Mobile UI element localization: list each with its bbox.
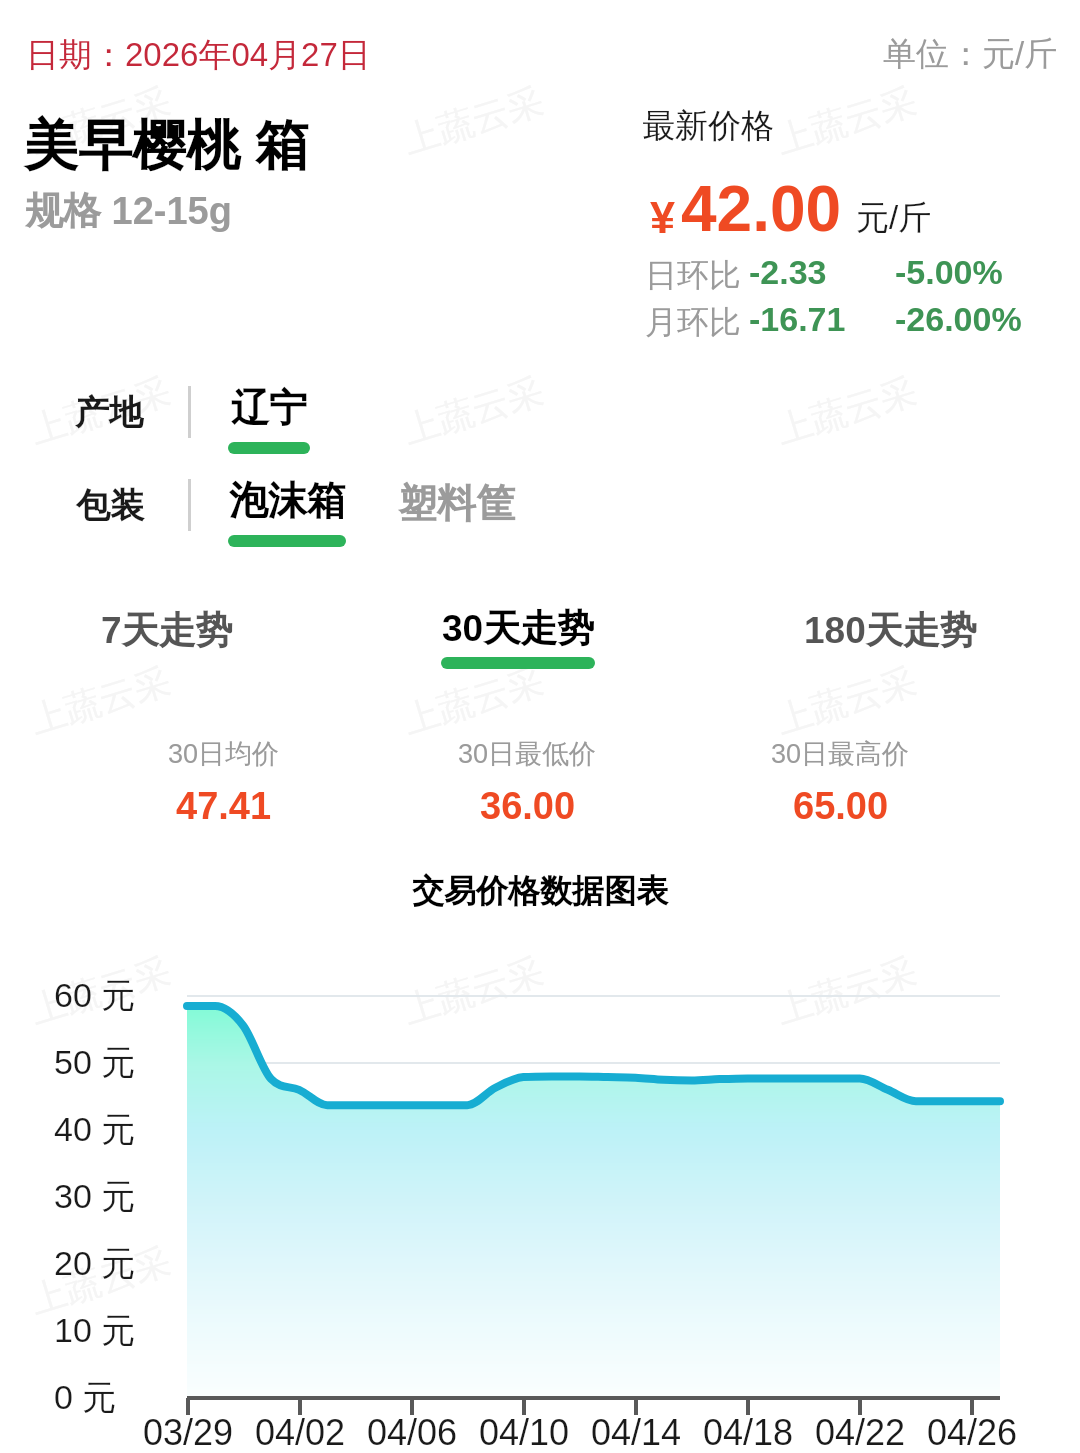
staticText: 10 元	[54, 1309, 136, 1352]
staticText: 月环比	[645, 302, 741, 342]
button[interactable]: 塑料筐	[398, 479, 515, 528]
staticText: 20 元	[54, 1242, 136, 1285]
staticText: 上蔬云采	[25, 948, 176, 1033]
staticText: 30日最低价	[458, 737, 597, 771]
staticText: 04/26	[927, 1412, 1018, 1452]
staticText: -2.33	[749, 253, 827, 291]
staticText: 最新价格	[642, 105, 774, 147]
staticText: 47.41	[176, 785, 272, 827]
staticText: 产地	[75, 391, 143, 434]
staticText: -5.00%	[895, 253, 1003, 291]
staticText: 上蔬云采	[771, 948, 922, 1033]
staticText: 包装	[76, 484, 144, 527]
staticText: 30日最高价	[771, 737, 910, 771]
staticText: -26.00%	[895, 300, 1022, 338]
staticText: 40 元	[54, 1108, 136, 1151]
staticText: 36.00	[480, 785, 576, 827]
staticText: 单位：元/斤	[883, 33, 1058, 75]
staticText: 日环比	[645, 255, 741, 295]
button[interactable]: 180天走势	[760, 590, 1020, 685]
staticText: 180天走势	[804, 607, 977, 654]
staticText: 元/斤	[856, 197, 932, 239]
staticText: 50 元	[54, 1041, 136, 1084]
staticText: 7天走势	[101, 607, 233, 654]
staticText: 上蔬云采	[25, 368, 176, 453]
staticText: 上蔬云采	[771, 78, 922, 163]
button[interactable]: 泡沫箱	[228, 476, 346, 547]
staticText: 04/18	[703, 1412, 794, 1452]
staticText: 04/10	[479, 1412, 570, 1452]
staticText: 日期：2026年04月27日	[26, 34, 371, 76]
staticText: 上蔬云采	[398, 948, 549, 1033]
staticText: 42.00	[681, 173, 842, 245]
staticText: 60 元	[54, 974, 136, 1017]
staticText: 规格 12-15g	[25, 187, 232, 235]
staticText: 65.00	[793, 785, 889, 827]
staticText: ¥	[650, 192, 676, 242]
button[interactable]: 辽宁	[228, 384, 310, 454]
staticText: 30 元	[54, 1175, 136, 1218]
staticText: 上蔬云采	[25, 1238, 176, 1323]
staticText: 03/29	[143, 1412, 234, 1452]
staticText: 上蔬云采	[398, 658, 549, 743]
staticText: 04/14	[591, 1412, 682, 1452]
staticText: 04/06	[367, 1412, 458, 1452]
staticText: 上蔬云采	[398, 1238, 549, 1323]
staticText: 上蔬云采	[771, 1238, 922, 1323]
staticText: 泡沫箱	[229, 476, 346, 525]
staticText: 上蔬云采	[25, 78, 176, 163]
button[interactable]: 30天走势	[388, 590, 648, 685]
staticText: 美早樱桃 箱	[24, 112, 310, 180]
staticText: 0 元	[54, 1376, 117, 1419]
staticText: 04/02	[255, 1412, 346, 1452]
staticText: 上蔬云采	[771, 658, 922, 743]
staticText: 30日均价	[168, 737, 280, 771]
staticText: 30天走势	[442, 605, 595, 652]
staticText: 04/22	[815, 1412, 906, 1452]
staticText: -16.71	[749, 300, 846, 338]
button[interactable]: 7天走势	[37, 590, 297, 685]
staticText: 塑料筐	[398, 479, 515, 528]
staticText: 交易价格数据图表	[412, 871, 668, 911]
staticText: 辽宁	[231, 384, 307, 432]
